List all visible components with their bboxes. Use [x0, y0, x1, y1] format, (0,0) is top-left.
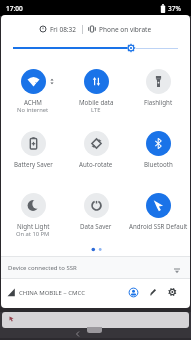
- staticText: Android SSR Default: [129, 222, 188, 230]
- staticText: Data Saver: [80, 222, 112, 230]
- staticText: Mobile data: [79, 98, 114, 106]
- staticText: 37%: [168, 4, 181, 13]
- staticText: No internet: [17, 106, 49, 114]
- staticText: Auto-rotate: [79, 160, 113, 168]
- button[interactable]: [74, 330, 82, 338]
- button[interactable]: [127, 122, 189, 176]
- staticText: ACHM: [24, 98, 42, 106]
- staticText: CHINA MOBILE ~ CMCC: [19, 289, 86, 297]
- staticText: Bluetooth: [144, 160, 173, 168]
- button[interactable]: [167, 287, 178, 298]
- staticText: Device connected to SSR: [8, 264, 77, 272]
- button[interactable]: [126, 43, 136, 53]
- button[interactable]: [128, 287, 139, 298]
- staticText: Fri 08:32: [50, 25, 77, 34]
- button[interactable]: [2, 184, 64, 238]
- button[interactable]: [65, 60, 127, 114]
- staticText: Flashlight: [144, 98, 173, 106]
- staticText: Phone on vibrate: [99, 25, 152, 34]
- button[interactable]: [127, 60, 189, 114]
- button[interactable]: [87, 327, 102, 333]
- button[interactable]: [148, 287, 158, 297]
- staticText: LTE: [91, 106, 101, 114]
- staticText: 17:00: [6, 4, 23, 13]
- button[interactable]: [2, 312, 189, 328]
- button[interactable]: [2, 60, 64, 114]
- button[interactable]: Device connected to SSR: [1, 257, 190, 279]
- button[interactable]: [2, 122, 64, 176]
- staticText: Battery Saver: [14, 160, 53, 168]
- button[interactable]: [65, 122, 127, 176]
- button[interactable]: [127, 184, 189, 238]
- button[interactable]: [65, 184, 127, 238]
- button[interactable]: Fri 08:32: [0, 22, 191, 36]
- staticText: Night Light: [17, 222, 50, 230]
- staticText: On at 10 PM: [16, 230, 50, 238]
